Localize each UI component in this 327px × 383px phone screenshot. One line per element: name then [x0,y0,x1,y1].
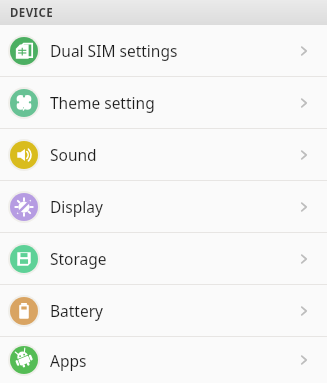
button[interactable]: Sound [0,129,327,180]
button[interactable]: Apps [0,337,327,383]
other: Open Apps [289,337,319,383]
other: Open Battery [289,285,319,336]
other: Open Display [289,181,319,232]
staticText: Battery [50,300,289,321]
other: Open Sound [289,129,319,180]
other: Open Storage [289,233,319,284]
other: Open Theme setting [289,77,319,128]
other: Open Dual SIM settings [289,25,319,76]
button[interactable]: Theme setting [0,77,327,128]
staticText: Dual SIM settings [50,40,289,61]
staticText: Theme setting [50,92,289,113]
button[interactable]: Dual SIM settings [0,25,327,76]
staticText: Apps [50,350,289,371]
staticText: Display [50,196,289,217]
staticText: Storage [50,248,289,269]
staticText: DEVICE [10,5,54,21]
button[interactable]: Battery [0,285,327,336]
button[interactable]: Storage [0,233,327,284]
button[interactable]: Display [0,181,327,232]
staticText: Sound [50,144,289,165]
